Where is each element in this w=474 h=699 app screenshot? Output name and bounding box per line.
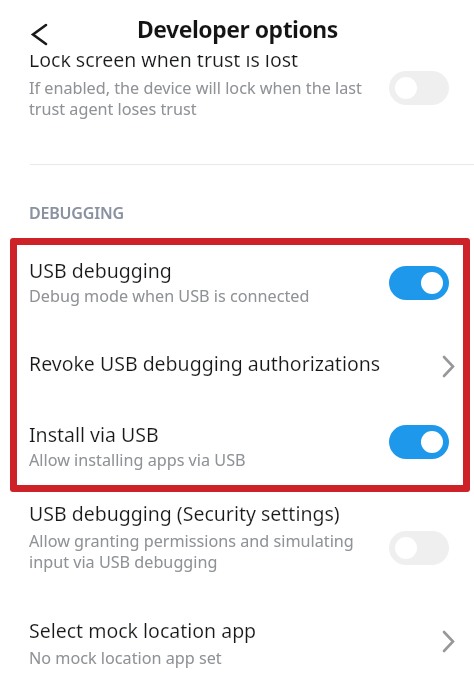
button[interactable]: Install via USB — [0, 413, 474, 488]
staticText: Install via USB — [29, 421, 159, 448]
staticText: Allow granting permissions and simulatin… — [29, 530, 354, 573]
staticText: Select mock location app — [29, 617, 257, 644]
staticText: USB debugging — [29, 257, 172, 284]
staticText: Debug mode when USB is connected — [29, 285, 310, 307]
staticText: Allow installing apps via USB — [29, 449, 246, 471]
staticText: Lock screen when trust is lost — [29, 46, 299, 73]
button[interactable]: Select mock location app — [0, 610, 474, 695]
staticText: DEBUGGING — [29, 202, 124, 224]
button[interactable]: USB debugging (Security settings) — [0, 495, 474, 595]
staticText: No mock location app set — [29, 647, 222, 669]
staticText: Revoke USB debugging authorizations — [29, 350, 381, 377]
staticText: USB debugging (Security settings) — [29, 500, 340, 527]
button[interactable]: Revoke USB debugging authorizations — [0, 345, 474, 413]
button[interactable]: USB debugging — [0, 247, 474, 345]
button[interactable]: Lock screen when trust is lost — [0, 38, 474, 143]
staticText: Developer options — [137, 13, 338, 44]
button[interactable] — [19, 14, 59, 54]
staticText: If enabled, the device will lock when th… — [29, 77, 362, 120]
